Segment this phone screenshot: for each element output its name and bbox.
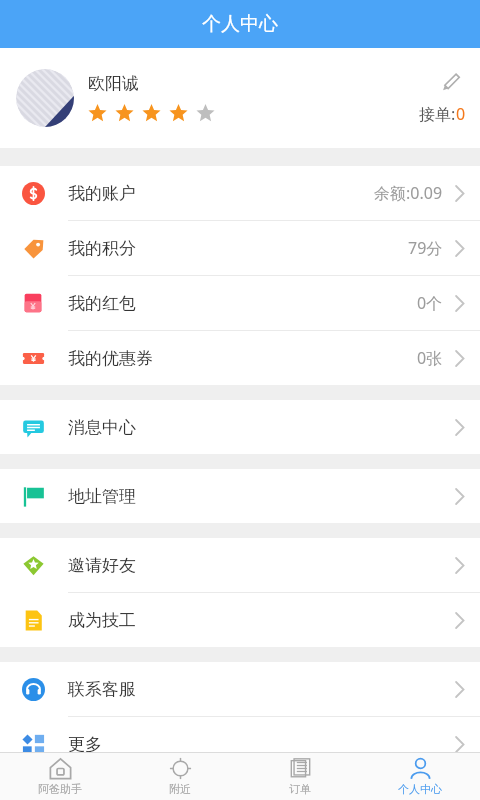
staticText: 附近 bbox=[169, 782, 191, 796]
staticText: 邀请好友 bbox=[68, 555, 136, 576]
button[interactable]: Edit profile bbox=[436, 67, 466, 97]
button[interactable]: 阿爸助手 bbox=[0, 753, 120, 800]
staticText: 消息中心 bbox=[68, 417, 136, 438]
button[interactable]: 更多 bbox=[0, 717, 480, 771]
button[interactable]: 我的账户 bbox=[0, 166, 480, 220]
button[interactable]: 邀请好友 bbox=[0, 538, 480, 592]
staticText: 订单 bbox=[289, 782, 311, 796]
staticText: 我的优惠券 bbox=[68, 348, 153, 369]
staticText: 0 bbox=[456, 103, 466, 125]
button[interactable]: 成为技工 bbox=[0, 593, 480, 647]
staticText: 个人中心 bbox=[398, 782, 442, 796]
staticText: 阿爸助手 bbox=[38, 782, 82, 796]
button[interactable]: 个人中心 bbox=[360, 753, 480, 800]
staticText: 接单: bbox=[419, 103, 456, 125]
button[interactable]: 订单 bbox=[240, 753, 360, 800]
staticText: 79分 bbox=[408, 237, 443, 259]
staticText: 余额:0.09 bbox=[374, 182, 443, 204]
button[interactable]: 联系客服 bbox=[0, 662, 480, 716]
button[interactable]: 我的优惠券 bbox=[0, 331, 480, 385]
staticText: 0个 bbox=[417, 292, 443, 314]
button[interactable]: 我的积分 bbox=[0, 221, 480, 275]
button[interactable]: 附近 bbox=[120, 753, 240, 800]
button[interactable]: 地址管理 bbox=[0, 469, 480, 523]
staticText: 个人中心 bbox=[202, 12, 278, 36]
staticText: 0张 bbox=[417, 347, 443, 369]
staticText: 欧阳诚 bbox=[88, 73, 139, 94]
staticText: 我的红包 bbox=[68, 293, 136, 314]
button[interactable] bbox=[16, 69, 74, 127]
staticText: 地址管理 bbox=[68, 486, 136, 507]
staticText: 更多 bbox=[68, 734, 102, 755]
staticText: 我的账户 bbox=[68, 183, 136, 204]
button[interactable]: 我的红包 bbox=[0, 276, 480, 330]
staticText: 我的积分 bbox=[68, 238, 136, 259]
staticText: 联系客服 bbox=[68, 679, 136, 700]
button[interactable]: 消息中心 bbox=[0, 400, 480, 454]
staticText: 成为技工 bbox=[68, 610, 136, 631]
